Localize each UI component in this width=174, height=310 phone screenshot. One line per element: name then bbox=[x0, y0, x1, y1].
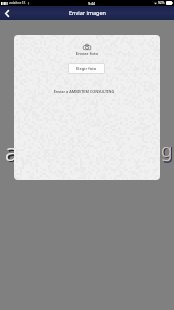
staticText: Enviar foto bbox=[14, 50, 160, 56]
staticText: vodafone ES bbox=[9, 1, 26, 5]
staticText: 92% bbox=[158, 1, 165, 5]
staticText: g bbox=[161, 137, 173, 163]
staticText: g bbox=[162, 138, 174, 164]
staticText: Enviar imagen bbox=[69, 9, 106, 16]
staticText: Enviar a AMBISTEM CONSULTING bbox=[14, 89, 157, 94]
staticText: a bbox=[6, 136, 20, 169]
button[interactable]: Back bbox=[1, 7, 13, 19]
staticText: Elegir foto bbox=[76, 66, 97, 72]
button[interactable]: Elegir foto bbox=[68, 63, 105, 74]
staticText: 9:44 bbox=[88, 1, 96, 6]
staticText: a bbox=[5, 135, 18, 168]
